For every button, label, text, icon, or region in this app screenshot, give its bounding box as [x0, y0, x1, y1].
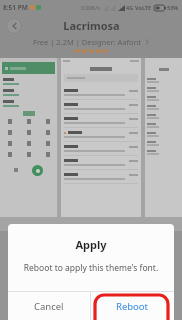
- staticText: Reboot to apply this theme's font.: [16, 262, 166, 274]
- staticText: 8:51 PM: [3, 3, 28, 12]
- staticText: Reboot: [116, 300, 149, 313]
- staticText: Apply: [8, 237, 174, 252]
- staticText: Cancel: [34, 300, 64, 313]
- staticText: Lacrimosa: [63, 18, 120, 33]
- button[interactable]: Free | 2.2M | Designer: Aafont: [31, 37, 152, 47]
- staticText: Free | 2.2M | Designer: Aafont: [33, 37, 141, 47]
- button[interactable]: Cancel: [8, 292, 90, 320]
- staticText: 4G: [126, 4, 134, 11]
- staticText: 53%: [167, 4, 179, 11]
- button[interactable]: Reboot: [91, 292, 174, 320]
- staticText: VoLTE: [135, 4, 152, 11]
- staticText: 0.00K/s: [81, 4, 100, 11]
- button[interactable]: Back: [6, 18, 22, 34]
